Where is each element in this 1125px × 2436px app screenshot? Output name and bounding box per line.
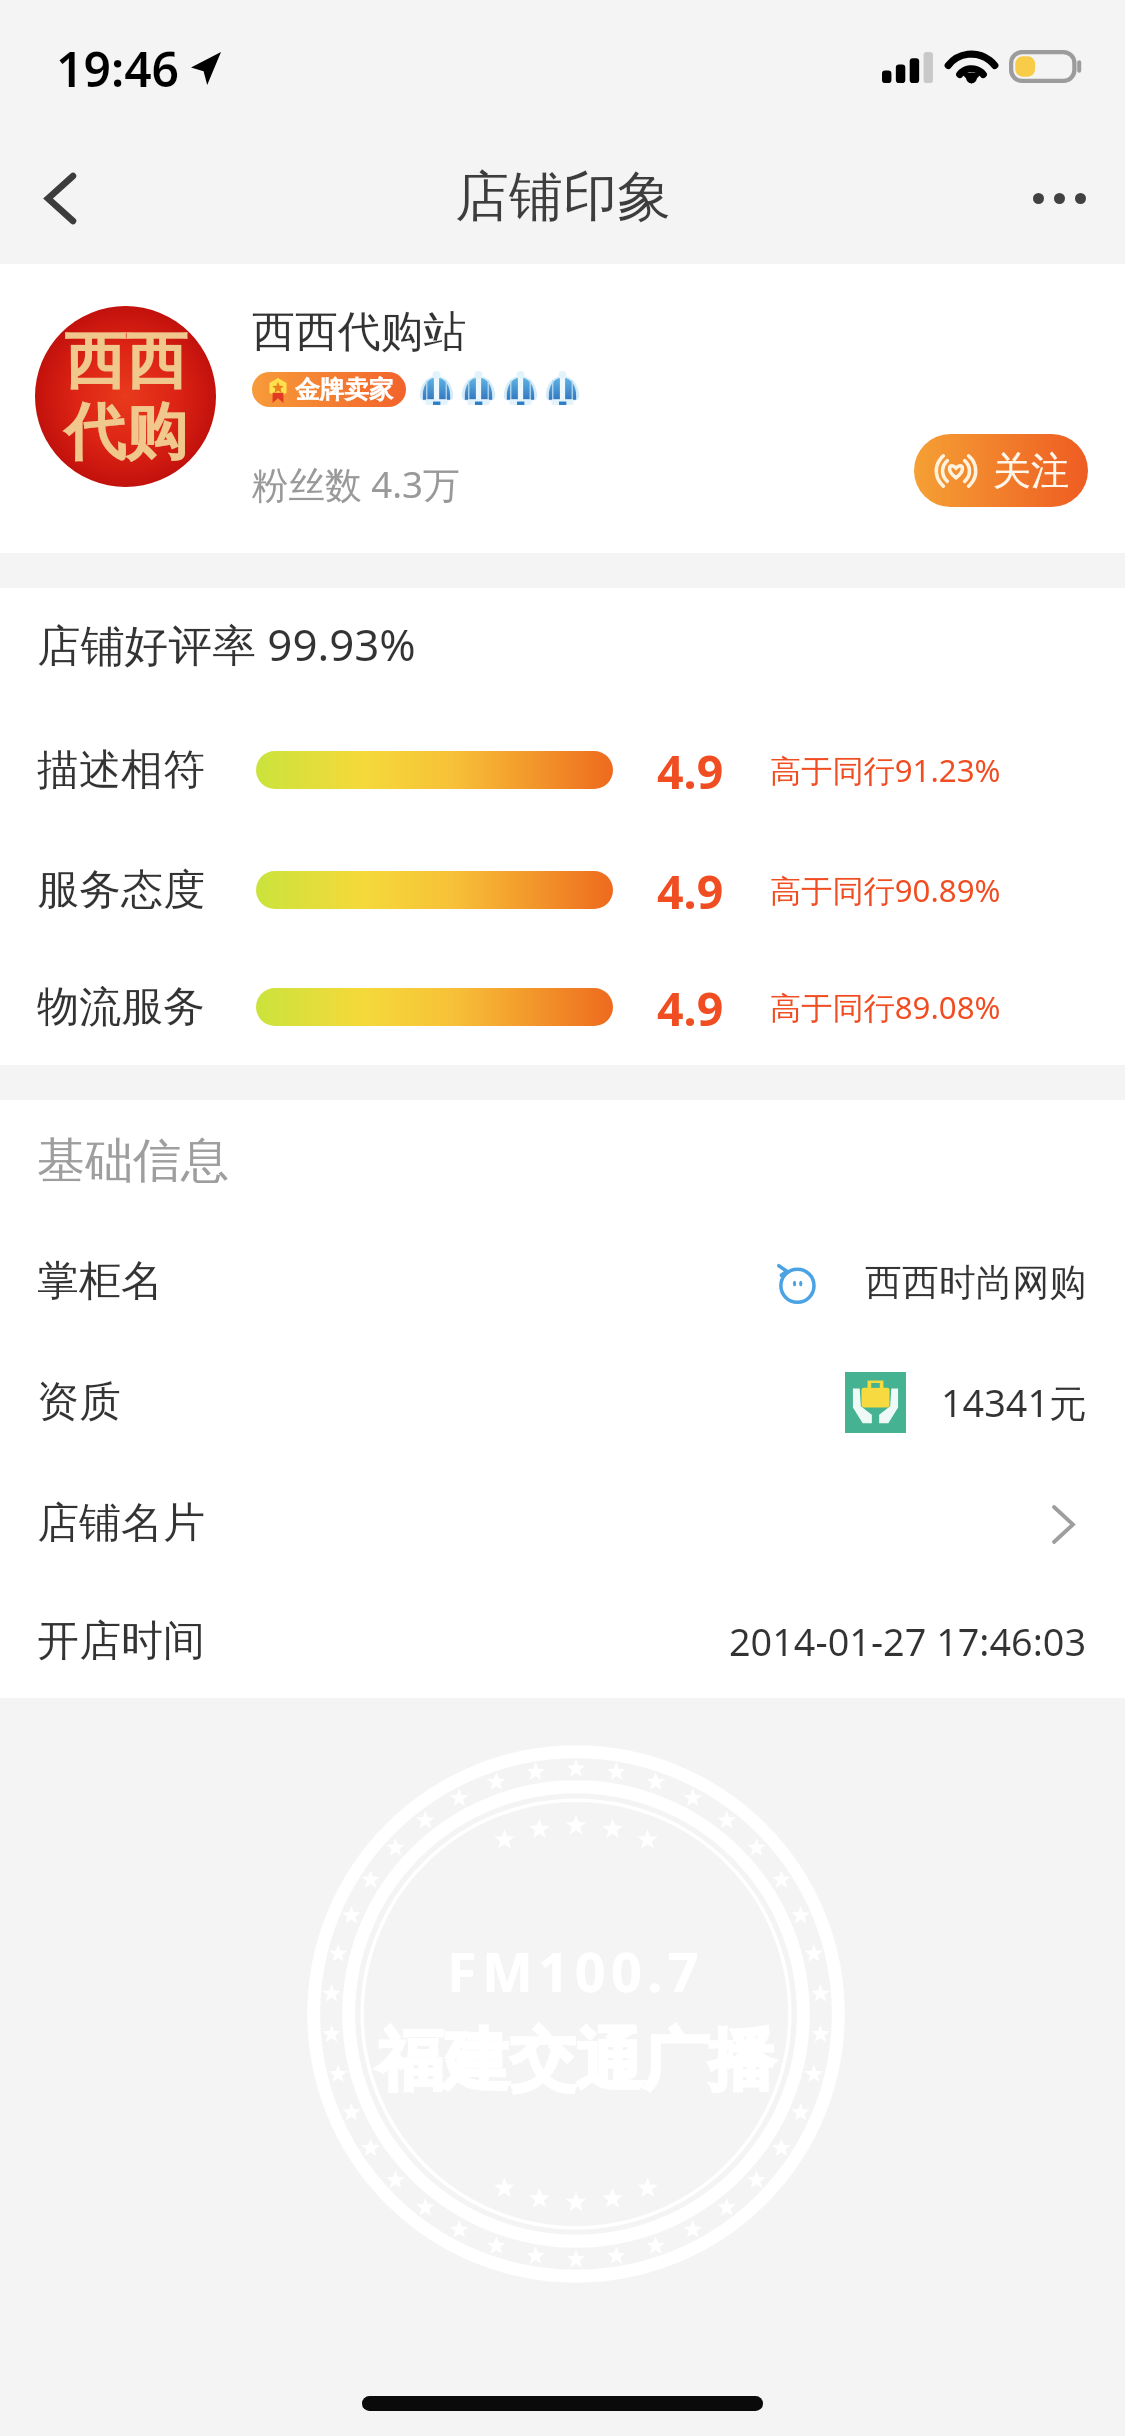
button[interactable]: 开店时间	[0, 1584, 1125, 1698]
staticText: 西西时尚网购	[865, 1259, 1087, 1305]
staticText: 代购	[64, 394, 187, 471]
button[interactable]: Shop avatar	[35, 306, 216, 487]
button[interactable]: 关注	[914, 434, 1088, 507]
staticText: 描述相符	[37, 744, 205, 797]
button[interactable]: More options	[993, 132, 1125, 264]
staticText: 服务态度	[37, 864, 205, 917]
staticText: 4.9	[657, 739, 724, 802]
staticText: 4.9	[657, 976, 724, 1039]
staticText: 高于同行90.89%	[770, 869, 1001, 912]
staticText: 2014-01-27 17:46:03	[729, 1616, 1087, 1667]
staticText: 店铺名片	[37, 1497, 205, 1550]
staticText: 高于同行89.08%	[770, 986, 1001, 1029]
staticText: 资质	[37, 1376, 121, 1429]
staticText: 西西代购站	[252, 305, 467, 359]
staticText: FM100.7	[447, 1934, 705, 2008]
staticText: 粉丝数 4.3万	[252, 459, 460, 509]
button[interactable]: 资质	[0, 1342, 1125, 1463]
staticText: 高于同行91.23%	[770, 749, 1001, 792]
staticText: 4.9	[657, 859, 724, 922]
staticText: 物流服务	[37, 981, 205, 1034]
staticText: 基础信息	[37, 1131, 229, 1191]
staticText: 福建交通广播	[377, 2019, 775, 2103]
staticText: 西西	[64, 323, 187, 400]
button[interactable]: Back	[11, 132, 110, 264]
staticText: 19:46	[56, 36, 180, 101]
staticText: 金牌卖家	[295, 374, 394, 405]
button[interactable]: 掌柜名	[0, 1221, 1125, 1342]
staticText: 店铺印象	[455, 163, 671, 231]
staticText: 掌柜名	[37, 1255, 163, 1308]
button[interactable]: 店铺名片	[0, 1463, 1125, 1584]
staticText: 店铺好评率 99.93%	[37, 614, 416, 674]
staticText: 开店时间	[37, 1615, 205, 1668]
staticText: 关注	[993, 447, 1070, 495]
staticText: 14341元	[941, 1377, 1087, 1429]
